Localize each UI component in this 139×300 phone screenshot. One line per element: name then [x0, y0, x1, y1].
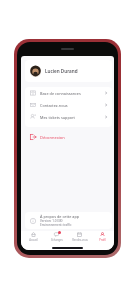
staticText: Base de connaissances	[40, 91, 81, 96]
staticText: Version: 1.0 (38)	[40, 219, 63, 223]
button[interactable]: Profil	[91, 231, 114, 243]
staticText: Environnement: traffic	[40, 223, 72, 227]
button[interactable]: Contactez-nous	[25, 99, 112, 111]
staticText: Contactez-nous	[40, 103, 68, 108]
staticText: Lucien Durand	[45, 68, 78, 74]
staticText: Mes tickets support	[40, 115, 75, 120]
button[interactable]: Rendez-vous	[68, 231, 91, 243]
staticText: Déconnexion	[40, 135, 65, 140]
staticText: Accueil	[29, 238, 38, 242]
button[interactable]: Echanges	[45, 231, 68, 243]
button[interactable]: Mes tickets support	[25, 111, 112, 123]
button[interactable]: Accueil	[21, 231, 45, 243]
button[interactable]: Lucien Durand	[25, 60, 112, 82]
staticText: Profil	[99, 238, 106, 242]
button[interactable]: Déconnexion	[25, 131, 112, 143]
staticText: À propos de cette app	[40, 214, 80, 219]
staticText: Echanges	[51, 238, 63, 242]
button[interactable]: Base de connaissances	[25, 87, 112, 99]
staticText: Rendez-vous	[72, 238, 88, 242]
other: Déconnexion	[30, 134, 36, 140]
button[interactable]: À propos de cette app	[25, 212, 112, 229]
